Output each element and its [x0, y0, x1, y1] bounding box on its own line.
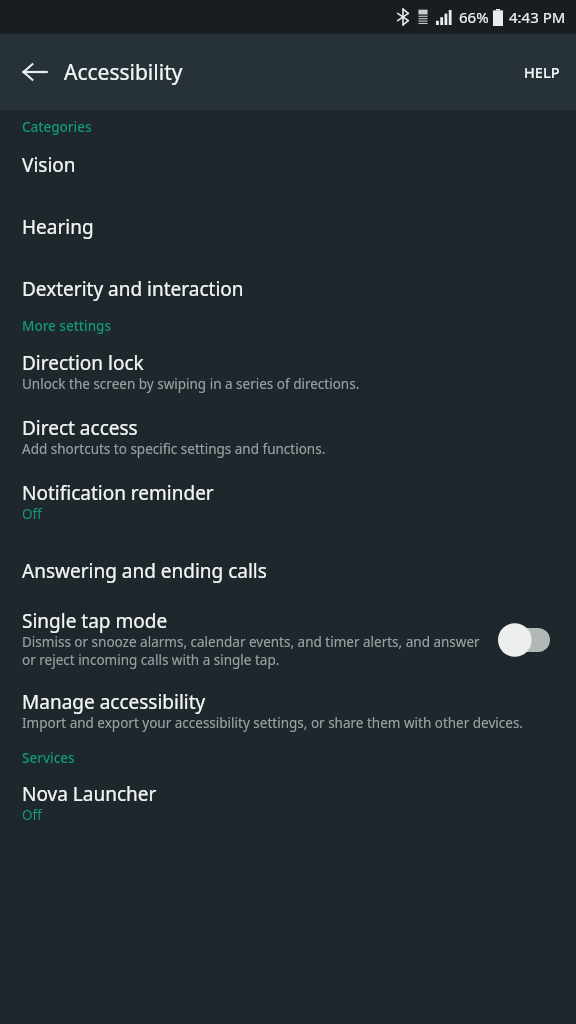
staticText: HELP [524, 62, 560, 82]
staticText: Off [22, 806, 42, 824]
staticText: More settings [22, 317, 112, 335]
button[interactable]: Dexterity and interaction [0, 239, 576, 301]
staticText: Vision [22, 154, 76, 177]
staticText: 66% [459, 7, 489, 27]
staticText: Notification reminder [22, 482, 214, 505]
staticText: Dexterity and interaction [22, 278, 244, 301]
button[interactable]: Nova Launcher [0, 767, 576, 824]
button[interactable]: Answering and ending calls [0, 523, 576, 583]
staticText: Services [22, 749, 75, 767]
staticText: Off [22, 505, 42, 523]
staticText: Accessibility [64, 58, 183, 87]
button[interactable]: Direct access [0, 393, 576, 458]
staticText: Answering and ending calls [22, 560, 267, 583]
button[interactable]: Back [10, 47, 60, 97]
button[interactable]: Single tap mode toggle [496, 620, 558, 660]
button[interactable]: Hearing [0, 177, 576, 239]
staticText: Unlock the screen by swiping in a series… [22, 375, 360, 393]
staticText: Manage accessibility [22, 691, 206, 714]
staticText: Categories [22, 118, 92, 136]
staticText: 4:43 PM [509, 7, 566, 27]
staticText: Nova Launcher [22, 783, 157, 806]
staticText: Direct access [22, 417, 138, 440]
staticText: Import and export your accessibility set… [22, 714, 523, 732]
button[interactable]: HELP [508, 50, 576, 94]
button[interactable]: Vision [0, 136, 576, 177]
staticText: Dismiss or snooze alarms, calendar event… [22, 633, 486, 669]
staticText: Single tap mode [22, 610, 168, 633]
button[interactable]: Notification reminder [0, 458, 576, 523]
staticText: Hearing [22, 216, 94, 239]
button[interactable]: Manage accessibility [0, 669, 576, 732]
button[interactable]: Direction lock [0, 335, 576, 393]
staticText: Add shortcuts to specific settings and f… [22, 440, 326, 458]
button[interactable]: Single tap mode [0, 583, 576, 669]
staticText: Direction lock [22, 352, 144, 375]
